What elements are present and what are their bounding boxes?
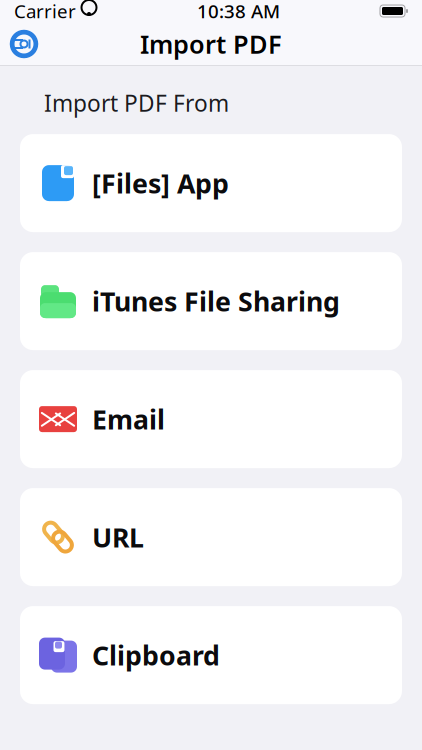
staticText: URL — [92, 519, 144, 555]
staticText: Import PDF — [140, 27, 282, 61]
staticText: [Files] App — [92, 165, 229, 201]
button[interactable]: Email — [20, 370, 402, 468]
staticText: Clipboard — [92, 637, 220, 673]
button[interactable]: [Files] App — [20, 134, 402, 232]
button[interactable]: iTunes File Sharing — [20, 252, 402, 350]
staticText: Email — [92, 401, 165, 437]
staticText: Import PDF From — [44, 88, 229, 118]
button[interactable]: Settings — [2, 22, 46, 66]
button[interactable]: URL — [20, 488, 402, 586]
button[interactable]: Clipboard — [20, 606, 402, 704]
staticText: 10:38 AM — [197, 0, 280, 23]
staticText: iTunes File Sharing — [92, 283, 340, 319]
staticText: Carrier — [14, 0, 76, 23]
